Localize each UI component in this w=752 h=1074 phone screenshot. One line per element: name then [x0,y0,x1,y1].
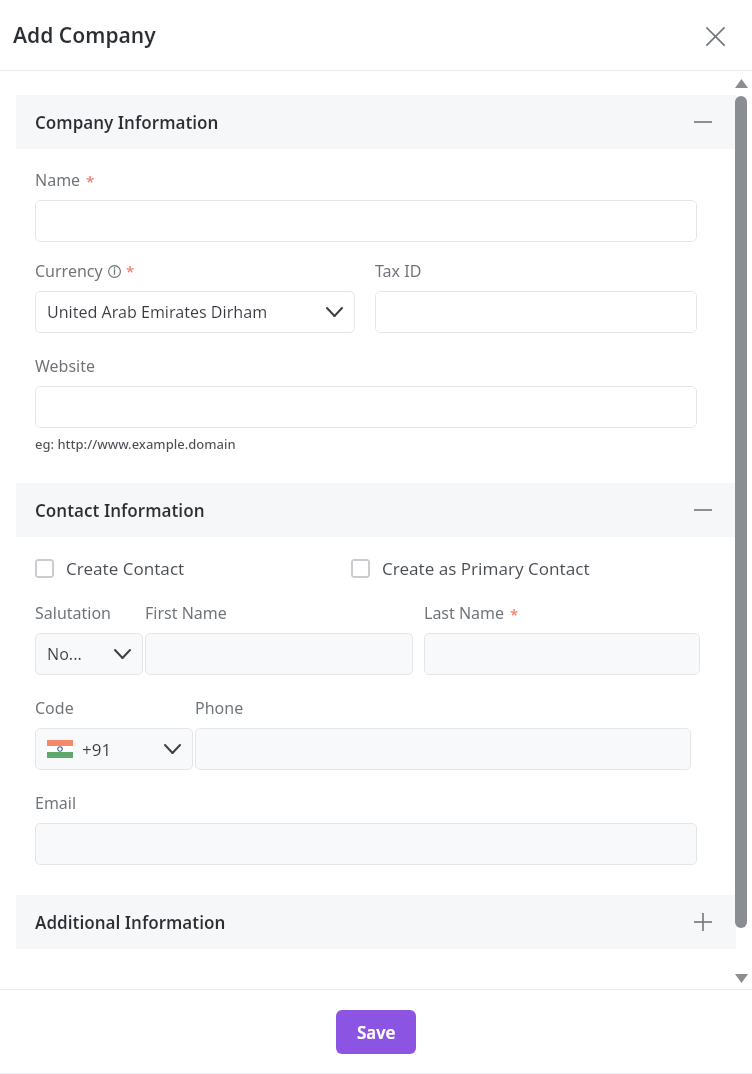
staticText: Create Contact [66,557,185,580]
button[interactable]: Company Information [16,95,736,149]
other: Collapse Company Information [692,111,714,133]
staticText: Currency [35,260,103,282]
staticText: * [126,261,135,281]
button[interactable] [35,386,697,428]
button[interactable]: +91 [35,728,193,770]
button[interactable] [195,728,691,770]
button[interactable] [424,633,700,675]
other: Collapse Contact Information [692,499,714,521]
staticText: * [86,171,95,191]
staticText: Website [35,355,96,377]
button[interactable] [35,200,697,242]
button[interactable]: No... [35,633,143,675]
button[interactable] [375,291,697,333]
staticText: Email [35,792,77,814]
other: Expand Additional Information [692,911,714,933]
button[interactable]: Save [336,1010,416,1054]
staticText: United Arab Emirates Dirham [47,301,268,323]
button[interactable]: United Arab Emirates Dirham [35,291,355,333]
staticText: Name [35,169,81,191]
button[interactable]: Additional Information [16,895,736,949]
staticText: No... [47,643,82,665]
button[interactable] [145,633,413,675]
staticText: Code [35,697,74,719]
staticText: Add Company [13,21,156,50]
button[interactable]: Contact Information [16,483,736,537]
button[interactable]: Create Contact [35,555,185,582]
staticText: Last Name [424,602,505,624]
staticText: Additional Information [35,911,226,934]
button[interactable]: Create as Primary Contact [351,555,590,582]
button[interactable]: Close [700,21,730,51]
button[interactable] [35,823,697,865]
staticText: +91 [82,738,112,761]
staticText: First Name [145,602,227,624]
staticText: * [510,604,519,624]
staticText: Company Information [35,111,219,134]
staticText: Contact Information [35,499,205,522]
staticText: Save [357,1021,396,1044]
staticText: Salutation [35,602,112,624]
staticText: eg: http://www.example.domain [35,435,236,453]
staticText: Tax ID [375,260,422,282]
staticText: Phone [195,697,244,719]
staticText: Create as Primary Contact [382,557,590,580]
